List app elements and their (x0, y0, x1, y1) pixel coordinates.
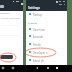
staticText: Printin (33, 43, 41, 46)
button[interactable]: Accessib (26, 33, 66, 39)
button[interactable]: Backup (26, 11, 66, 17)
staticText: Settings (28, 6, 41, 10)
staticText: Settings (0, 11, 10, 14)
staticText: SYSTEM (28, 21, 37, 24)
button[interactable]: About ph (26, 57, 66, 63)
button[interactable]: Printin (26, 41, 66, 47)
staticText: Accessib (33, 35, 44, 38)
button[interactable]: Back (36, 67, 38, 69)
button[interactable]: Tab (0, 5, 4, 8)
staticText: About ph (33, 59, 45, 62)
staticText: Date time (33, 28, 45, 31)
button[interactable]: Build number (0, 55, 13, 59)
staticText: enable developer (1, 17, 20, 20)
staticText: Developer o (33, 51, 48, 54)
button[interactable]: Developer o (26, 49, 66, 55)
button[interactable]: Date time (26, 26, 66, 32)
staticText: Backup (33, 13, 42, 16)
